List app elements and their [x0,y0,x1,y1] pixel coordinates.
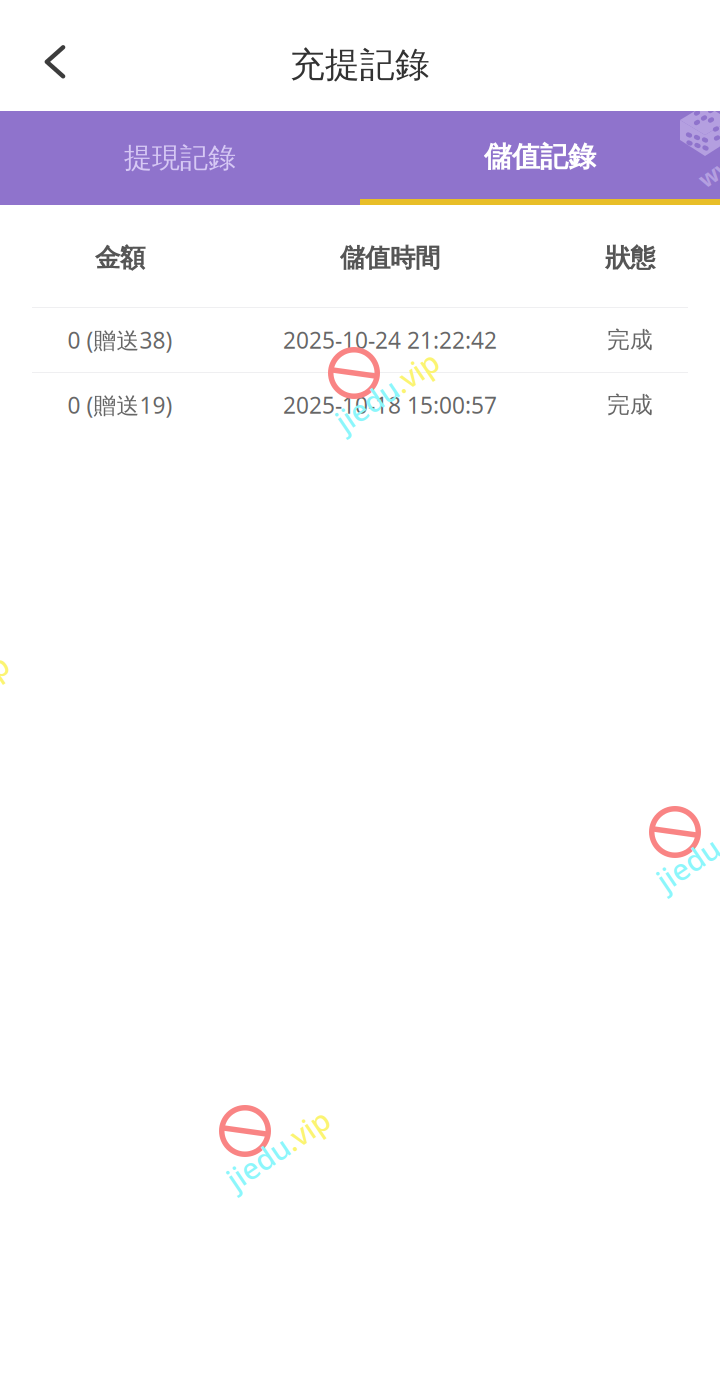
staticText: 提現記錄 [124,141,236,175]
staticText: 狀態 [605,242,655,273]
staticText: jiedu [219,1129,288,1168]
button[interactable]: 提現記錄 [0,111,360,205]
staticText: 0 (贈送38) [67,325,172,355]
staticText: .vip [288,1129,337,1168]
staticText: ww [697,156,720,186]
staticText: 完成 [607,326,653,354]
staticText: 充提記錄 [290,44,430,86]
staticText: .vip [397,371,446,410]
staticText: jiedu [328,371,397,410]
staticText: 2025-10-18 15:00:57 [283,390,497,420]
staticText: 儲值記錄 [484,140,596,174]
staticText: 完成 [607,391,653,419]
staticText: 金額 [95,242,145,273]
staticText: 儲值時間 [340,242,440,273]
staticText: .vip [718,830,720,869]
button[interactable]: 儲值記錄 [360,111,720,205]
staticText: 0 (贈送19) [67,390,172,420]
staticText: .vip [0,674,16,713]
staticText: 2025-10-24 21:22:42 [283,325,497,355]
staticText: jiedu [649,830,718,869]
button[interactable]: Back [9,16,101,108]
